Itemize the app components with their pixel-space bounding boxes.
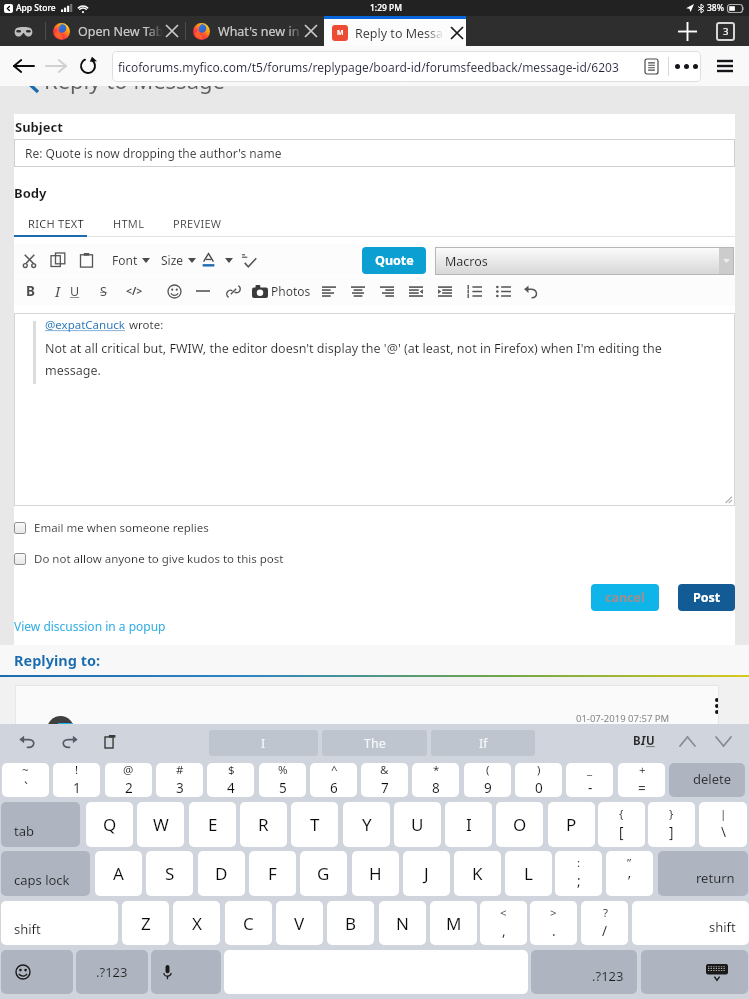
button[interactable]: F xyxy=(249,851,296,896)
button[interactable]: | xyxy=(699,802,747,847)
button[interactable]: Numbered list xyxy=(463,280,485,302)
button[interactable]: $ xyxy=(207,763,254,797)
button[interactable]: Align centre xyxy=(347,280,369,302)
button[interactable]: @ xyxy=(105,763,152,797)
button[interactable]: I xyxy=(445,802,492,847)
button[interactable]: Post xyxy=(678,584,735,611)
button[interactable]: O xyxy=(496,802,543,847)
button[interactable]: S xyxy=(146,851,193,896)
button[interactable]: ) xyxy=(515,763,562,797)
button[interactable]: The xyxy=(322,730,427,756)
button[interactable]: < xyxy=(480,901,527,945)
button[interactable]: Redo xyxy=(54,726,84,756)
button[interactable]: ! xyxy=(53,763,100,797)
button[interactable]: .?123 xyxy=(531,950,637,994)
button[interactable]: : xyxy=(555,851,602,896)
button[interactable]: shift xyxy=(632,901,749,945)
button[interactable]: caps lock xyxy=(1,851,90,896)
button[interactable]: Email me when someone replies xyxy=(14,520,209,536)
button[interactable]: N xyxy=(379,901,426,945)
button[interactable]: Align left xyxy=(318,280,340,302)
button[interactable]: </> xyxy=(123,280,145,302)
button[interactable]: R xyxy=(240,802,287,847)
button[interactable]: Cut xyxy=(18,249,40,271)
button[interactable]: Size xyxy=(161,249,196,271)
button[interactable]: Y xyxy=(343,802,390,847)
button[interactable]: A xyxy=(95,851,142,896)
button[interactable]: Quote xyxy=(362,247,426,274)
button[interactable]: J xyxy=(403,851,450,896)
button[interactable]: Undo xyxy=(12,726,42,756)
button[interactable]: Paste xyxy=(96,726,126,756)
button[interactable]: Bullet list xyxy=(492,280,514,302)
button[interactable]: I xyxy=(47,280,69,302)
button[interactable]: X xyxy=(173,901,220,945)
button[interactable]: M xyxy=(430,901,477,945)
button[interactable]: > xyxy=(530,901,577,945)
button[interactable]: Close tab xyxy=(446,22,468,44)
button[interactable]: RICH TEXT xyxy=(14,210,99,237)
button[interactable]: K xyxy=(454,851,501,896)
button[interactable]: ( xyxy=(464,763,511,797)
button[interactable]: Undo xyxy=(520,280,542,302)
button[interactable]: Photos xyxy=(252,277,311,305)
button[interactable]: H xyxy=(352,851,399,896)
button[interactable]: C xyxy=(225,901,272,945)
button[interactable]: Indent xyxy=(434,280,456,302)
button[interactable]: P xyxy=(548,802,595,847)
button[interactable]: Menu xyxy=(711,52,739,80)
button[interactable]: .?123 xyxy=(76,950,148,994)
button[interactable]: Q xyxy=(86,802,133,847)
button[interactable]: Hide keyboard xyxy=(641,950,748,994)
button[interactable]: # xyxy=(156,763,203,797)
button[interactable]: New tab xyxy=(672,16,702,46)
button[interactable]: Copy xyxy=(47,249,69,271)
button[interactable]: Font colour xyxy=(197,244,219,276)
button[interactable]: G xyxy=(300,851,347,896)
button[interactable]: Font xyxy=(112,249,150,271)
button[interactable]: ^ xyxy=(310,763,357,797)
button[interactable]: Forward xyxy=(42,52,70,80)
button[interactable]: Do not allow anyone to give kudos to thi… xyxy=(14,551,284,567)
button[interactable]: { xyxy=(598,802,645,847)
button[interactable]: Align right xyxy=(376,280,398,302)
button[interactable]: _ xyxy=(566,763,613,797)
button[interactable]: * xyxy=(412,763,459,797)
button[interactable]: tab xyxy=(1,802,80,847)
button[interactable]: B xyxy=(629,729,659,753)
button[interactable]: Dictation xyxy=(151,950,221,994)
button[interactable]: cancel xyxy=(591,584,659,611)
button[interactable]: Z xyxy=(122,901,169,945)
button[interactable]: V xyxy=(276,901,323,945)
button[interactable]: Macros xyxy=(435,247,734,275)
button[interactable]: delete xyxy=(669,763,745,797)
button[interactable]: B xyxy=(327,901,374,945)
button[interactable]: M xyxy=(324,16,466,46)
button[interactable]: Back xyxy=(10,52,38,80)
button[interactable]: T xyxy=(291,802,338,847)
button[interactable]: Re: Quote is now dropping the author's n… xyxy=(14,139,735,167)
button[interactable]: + xyxy=(618,763,665,797)
button[interactable]: Spell check xyxy=(238,249,260,271)
button[interactable]: ficoforums.myfico.com/t5/forums/replypag… xyxy=(112,51,701,82)
button[interactable]: Emoji xyxy=(163,280,185,302)
button[interactable]: If xyxy=(431,730,535,756)
button[interactable]: S xyxy=(92,280,114,302)
button[interactable]: View discussion in a popup xyxy=(14,618,166,634)
button[interactable]: Private browsing xyxy=(13,25,34,38)
button[interactable]: E xyxy=(189,802,236,847)
button[interactable]: D xyxy=(198,851,245,896)
button[interactable]: Previous xyxy=(673,727,701,755)
button[interactable]: HTML xyxy=(99,210,159,237)
button[interactable]: Show tabs xyxy=(716,22,735,41)
button[interactable]: ~ xyxy=(2,763,49,797)
button[interactable]: U xyxy=(394,802,441,847)
button[interactable]: & xyxy=(361,763,408,797)
button[interactable]: ” xyxy=(606,851,653,896)
button[interactable]: Colour picker xyxy=(219,244,239,276)
button[interactable]: } xyxy=(648,802,695,847)
button[interactable]: I xyxy=(209,730,318,756)
button[interactable]: W xyxy=(137,802,184,847)
button[interactable]: Outdent xyxy=(405,280,427,302)
